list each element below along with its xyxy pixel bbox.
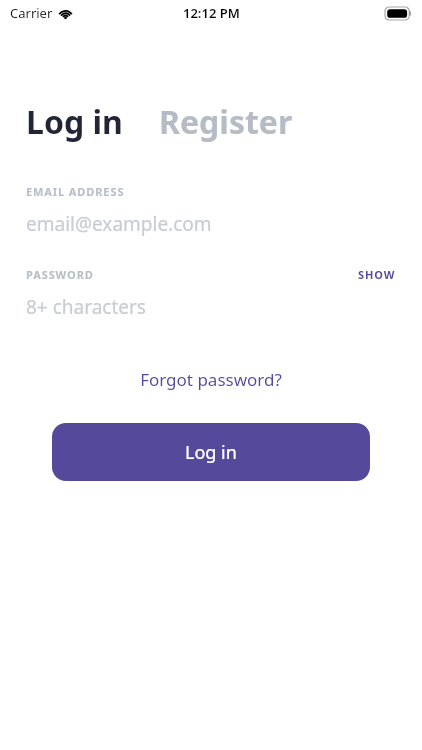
staticText: SHOW [358, 267, 396, 282]
button[interactable]: email@example.com [0, 209, 422, 239]
button[interactable]: Register [159, 100, 293, 144]
button[interactable]: Log in [26, 100, 123, 144]
staticText: Register [159, 100, 293, 144]
staticText: Forgot password? [140, 368, 282, 391]
button[interactable]: SHOW [358, 267, 396, 282]
staticText: PASSWORD [26, 267, 94, 282]
staticText: 8+ characters [26, 294, 146, 320]
button[interactable]: 8+ characters [0, 292, 422, 322]
button[interactable]: Forgot password? [132, 364, 290, 395]
staticText: Carrier [10, 4, 53, 22]
staticText: email@example.com [26, 211, 212, 237]
button[interactable]: Log in [52, 423, 370, 481]
staticText: EMAIL ADDRESS [26, 184, 125, 199]
staticText: Log in [185, 440, 237, 465]
staticText: 12:12 PM [183, 4, 240, 22]
staticText: Log in [26, 100, 123, 144]
